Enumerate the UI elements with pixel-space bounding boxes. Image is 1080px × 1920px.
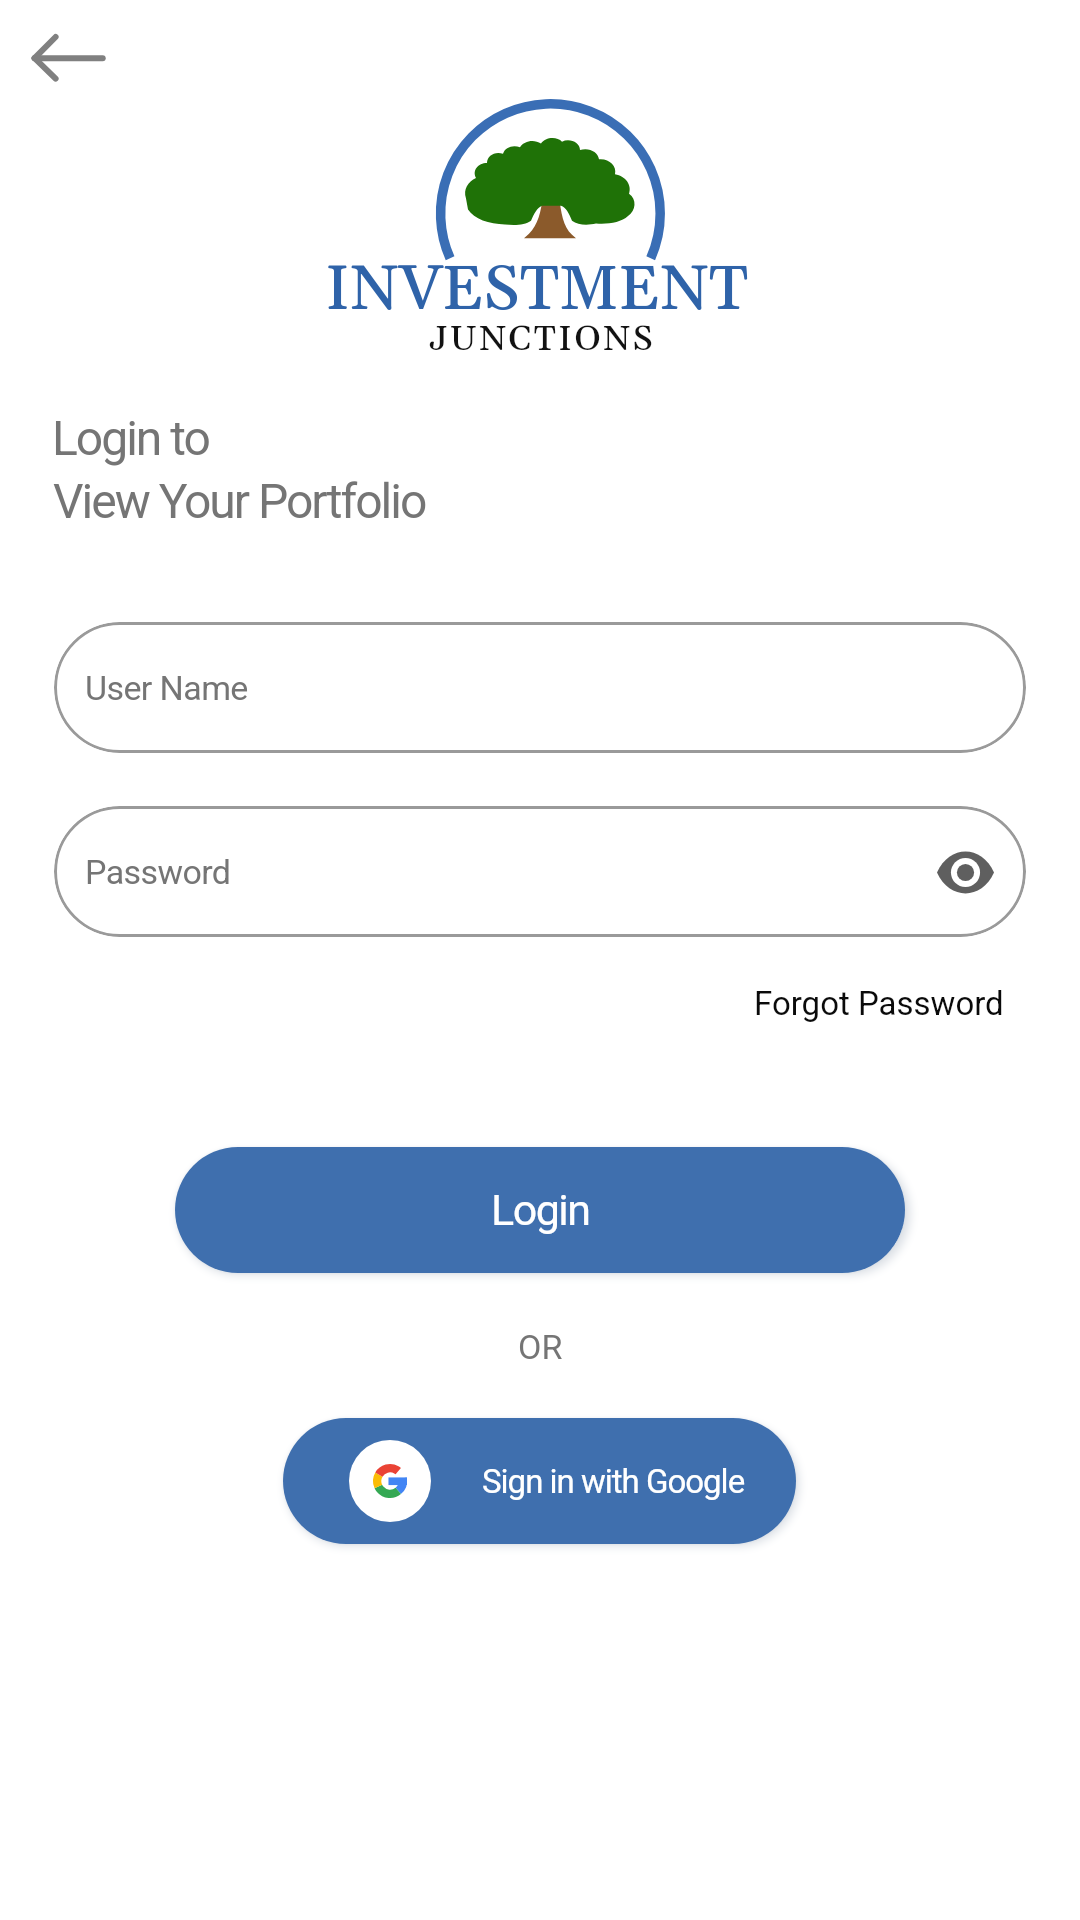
staticText: Sign in with Google — [482, 1462, 745, 1501]
staticText: View Your Portfolio — [53, 473, 426, 529]
staticText: JUNCTIONS — [429, 318, 655, 362]
button[interactable]: User Name — [54, 622, 1026, 753]
staticText: User Name — [85, 668, 248, 708]
button[interactable]: Show password — [921, 828, 1009, 916]
staticText: Password — [85, 852, 231, 892]
staticText: Forgot Password — [754, 984, 1004, 1023]
button[interactable]: Login — [175, 1147, 905, 1273]
button[interactable]: Password — [54, 806, 1026, 937]
button[interactable]: Back — [14, 20, 124, 96]
staticText: Login — [491, 1185, 590, 1235]
staticText: OR — [518, 1327, 563, 1367]
button[interactable]: Forgot Password — [742, 978, 1016, 1029]
staticText: Login to — [52, 410, 209, 466]
staticText: INVESTMENT — [325, 251, 749, 330]
button[interactable]: Sign in with Google — [283, 1418, 796, 1544]
